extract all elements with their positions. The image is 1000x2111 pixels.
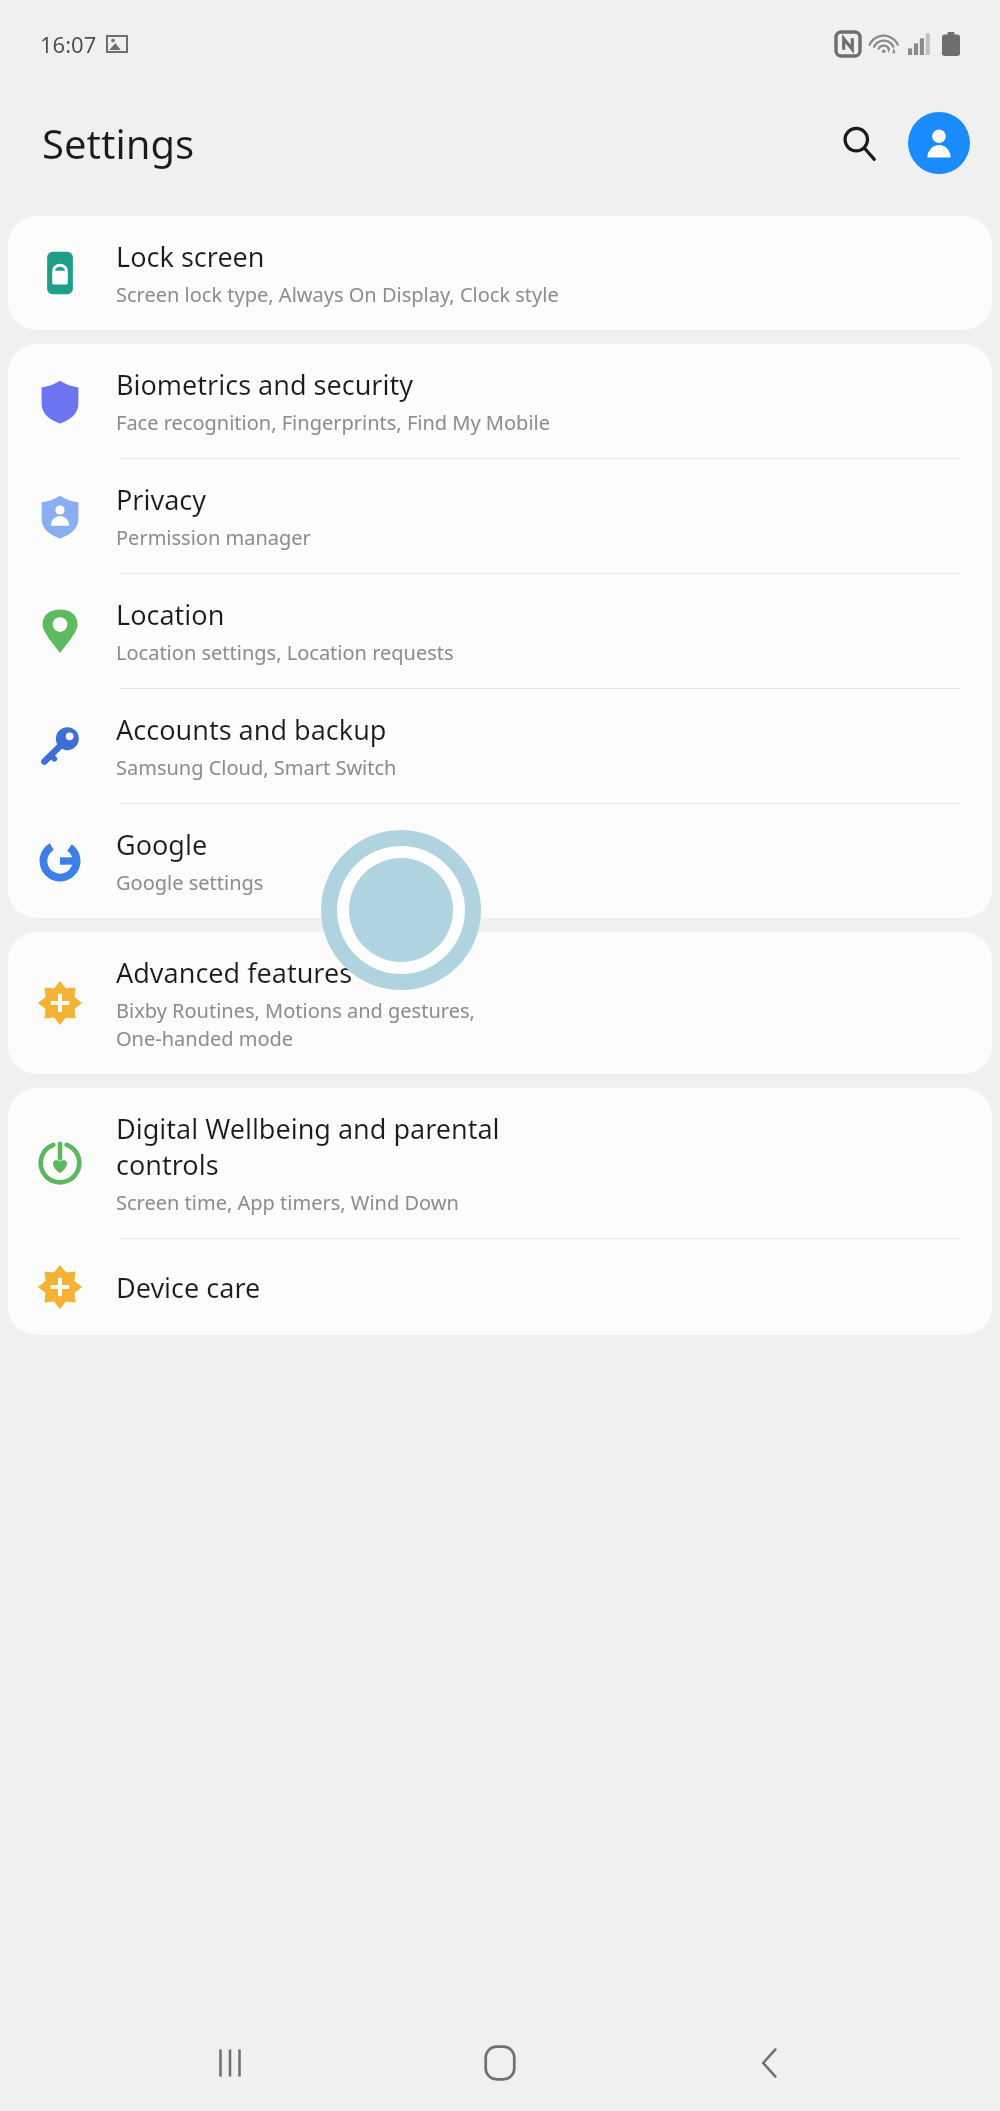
staticText: Samsung Cloud, Smart Switch bbox=[116, 754, 397, 781]
staticText: Accounts and backup bbox=[116, 711, 387, 748]
staticText: Screen lock type, Always On Display, Clo… bbox=[116, 281, 559, 308]
button[interactable]: Search bbox=[828, 112, 890, 174]
staticText: Advanced features bbox=[116, 954, 353, 991]
staticText: Biometrics and security bbox=[116, 366, 413, 403]
button[interactable]: Account bbox=[908, 112, 970, 174]
staticText: Google bbox=[116, 826, 208, 863]
button[interactable]: Location bbox=[8, 574, 992, 688]
staticText: Bixby Routines, Motions and gestures, On… bbox=[116, 997, 475, 1052]
button[interactable]: Lock screen bbox=[8, 216, 992, 330]
staticText: Face recognition, Fingerprints, Find My … bbox=[116, 409, 550, 436]
staticText: Settings bbox=[42, 116, 195, 170]
staticText: Location bbox=[116, 596, 225, 633]
button[interactable]: Digital Wellbeing and parental controls bbox=[8, 1088, 992, 1238]
staticText: Device care bbox=[116, 1269, 261, 1306]
staticText: Google settings bbox=[116, 869, 264, 896]
button[interactable]: Home bbox=[460, 2023, 540, 2103]
button[interactable]: Biometrics and security bbox=[8, 344, 992, 458]
button[interactable]: Privacy bbox=[8, 459, 992, 573]
staticText: Digital Wellbeing and parental controls bbox=[116, 1110, 500, 1183]
button[interactable]: Google bbox=[8, 804, 992, 918]
button[interactable]: Advanced features bbox=[8, 932, 992, 1074]
staticText: Location settings, Location requests bbox=[116, 639, 454, 666]
button[interactable]: Back bbox=[730, 2023, 810, 2103]
staticText: Privacy bbox=[116, 481, 207, 518]
button[interactable]: Device care bbox=[8, 1239, 992, 1335]
staticText: Screen time, App timers, Wind Down bbox=[116, 1189, 459, 1216]
staticText: Lock screen bbox=[116, 238, 265, 275]
button[interactable]: Accounts and backup bbox=[8, 689, 992, 803]
button[interactable]: Recent apps bbox=[190, 2023, 270, 2103]
staticText: 16:07 bbox=[40, 29, 97, 59]
staticText: Permission manager bbox=[116, 524, 311, 551]
